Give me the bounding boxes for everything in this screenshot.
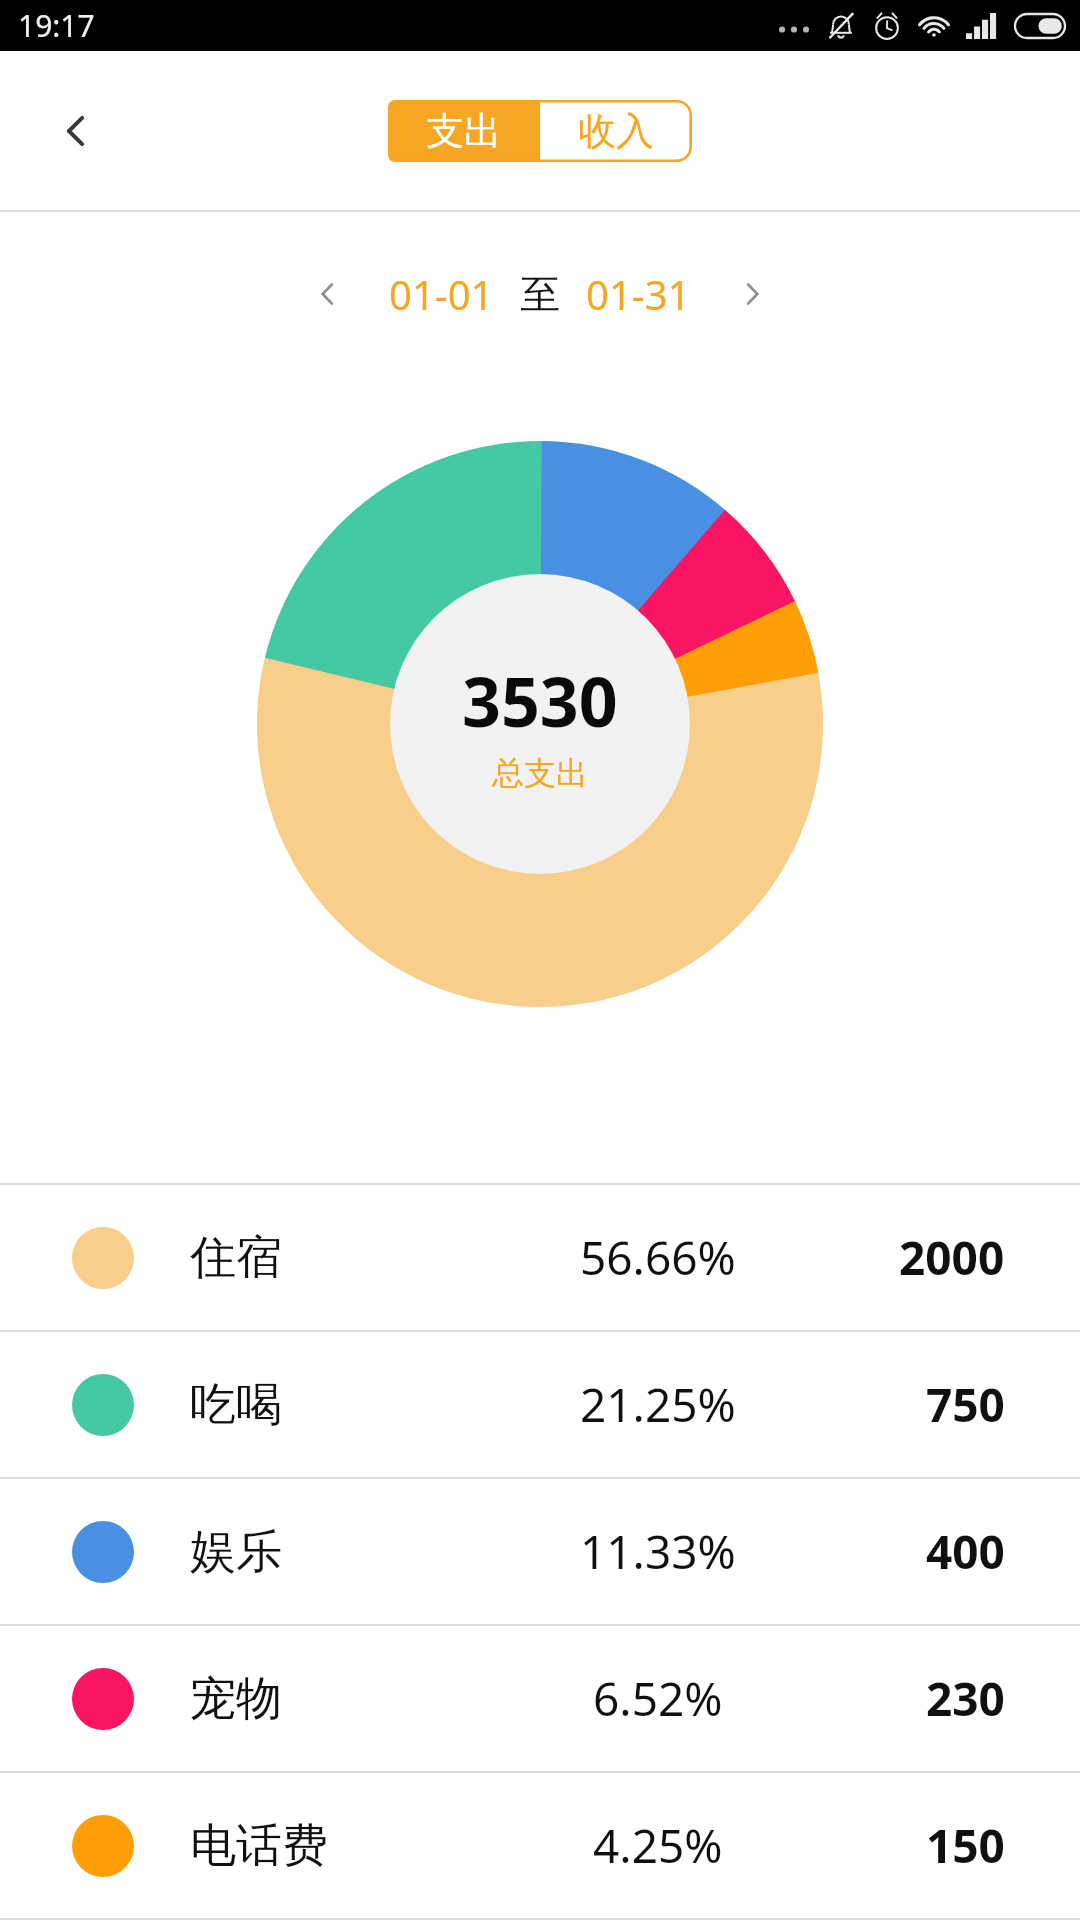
button[interactable]: 收入: [540, 100, 692, 162]
staticText: 56.66%: [580, 1226, 736, 1289]
staticText: 6.52%: [593, 1667, 723, 1730]
button[interactable]: 电话费: [0, 1773, 1080, 1918]
staticText: 3530: [462, 654, 618, 747]
staticText: 支出: [426, 107, 502, 155]
button[interactable]: 吃喝: [0, 1332, 1080, 1477]
staticText: 住宿: [190, 1229, 282, 1287]
button[interactable]: 住宿: [0, 1185, 1080, 1330]
button[interactable]: 01-01: [389, 267, 494, 321]
staticText: 2000: [899, 1226, 1005, 1289]
staticText: 19:17: [18, 5, 95, 46]
button[interactable]: Previous period: [293, 259, 363, 329]
staticText: 11.33%: [580, 1520, 736, 1583]
staticText: 4.25%: [593, 1814, 723, 1877]
staticText: 230: [926, 1667, 1005, 1730]
staticText: 娱乐: [190, 1523, 282, 1581]
staticText: 收入: [578, 107, 654, 155]
staticText: 400: [926, 1520, 1005, 1583]
staticText: 宠物: [190, 1670, 282, 1728]
staticText: 总支出: [492, 753, 588, 793]
button[interactable]: 娱乐: [0, 1479, 1080, 1624]
button[interactable]: 01-31: [586, 267, 691, 321]
staticText: 吃喝: [190, 1376, 282, 1434]
button[interactable]: 宠物: [0, 1626, 1080, 1771]
staticText: 电话费: [190, 1817, 328, 1875]
staticText: 至: [520, 269, 560, 319]
staticText: 21.25%: [580, 1373, 736, 1436]
button[interactable]: 支出: [388, 100, 540, 162]
staticText: 150: [926, 1814, 1005, 1877]
button[interactable]: Next period: [717, 259, 787, 329]
staticText: 750: [926, 1373, 1005, 1436]
button[interactable]: Back: [28, 83, 124, 179]
